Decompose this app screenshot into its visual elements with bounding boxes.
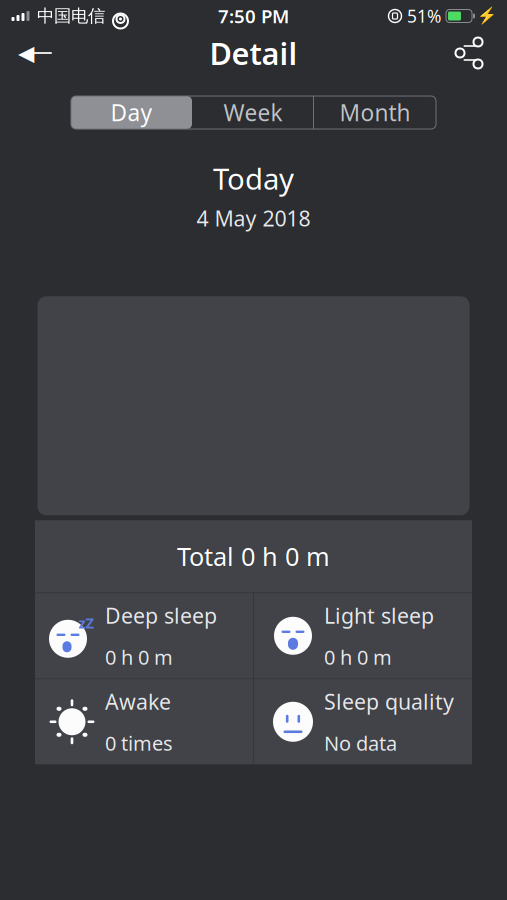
button[interactable]: zZ [35,593,253,678]
button[interactable]: Light sleep [254,593,472,678]
staticText: 4 May 2018 [196,204,310,232]
staticText: Detail [209,33,297,73]
staticText: No data [324,730,397,756]
staticText: Month [339,97,410,127]
staticText: Deep sleep [105,601,217,630]
staticText: ◀ [18,41,34,65]
button[interactable]: Month [314,96,436,129]
staticText: zZ [78,613,93,632]
staticText: 51% [407,4,441,27]
staticText: Day [110,97,152,127]
button[interactable]: Week [192,96,314,129]
staticText: 0 h 0 m [105,644,173,670]
button[interactable]: Day [71,96,192,129]
staticText: 0 times [105,730,173,756]
button[interactable]: Sleep quality [254,679,472,764]
staticText: Total 0 h 0 m [177,539,330,573]
staticText: Week [223,97,282,127]
staticText: Awake [105,687,171,716]
staticText: ⚡ [477,7,497,25]
staticText: 中国电信 [37,5,105,27]
staticText: 7:50 PM [218,4,289,28]
staticText: Light sleep [324,601,434,630]
button[interactable]: Awake [35,679,253,764]
button[interactable]: Back [12,31,64,75]
staticText: Today [213,159,294,198]
button[interactable]: Share [443,31,495,75]
staticText: 0 h 0 m [324,644,392,670]
staticText: Sleep quality [324,687,454,716]
